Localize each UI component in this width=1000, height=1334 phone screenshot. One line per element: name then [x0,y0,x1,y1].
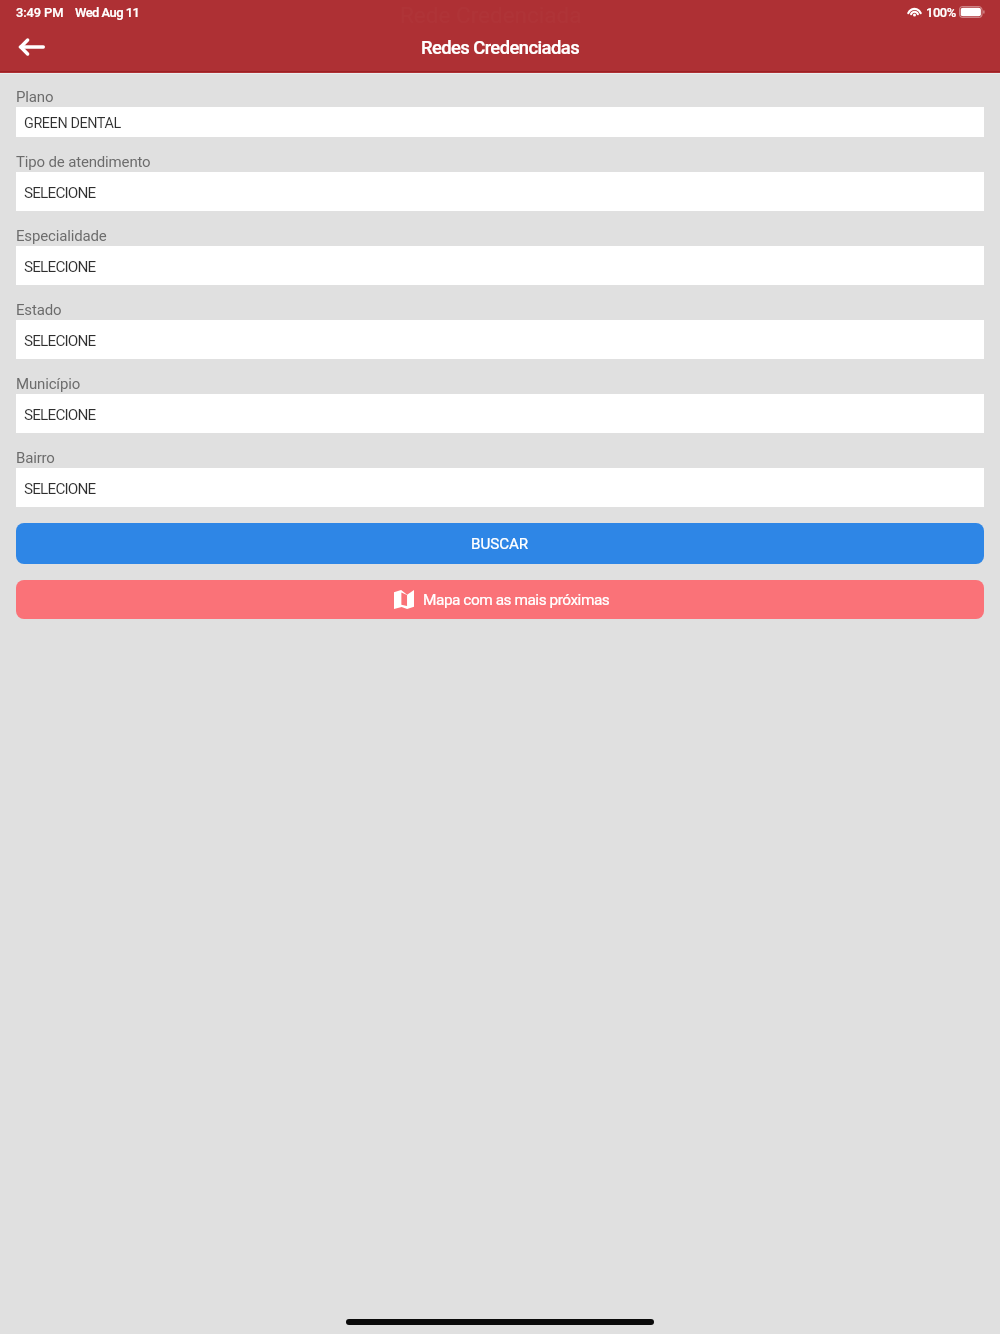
staticText: SELECIONE [24,480,96,498]
staticText: 3:49 PM [16,5,64,20]
staticText: SELECIONE [24,406,96,424]
button[interactable]: GREEN DENTAL [16,107,984,137]
staticText: Wed Aug 11 [75,5,140,20]
staticText: SELECIONE [24,258,96,276]
button[interactable]: SELECIONE [16,246,984,285]
staticText: BUSCAR [471,535,529,553]
staticText: Plano [16,88,54,106]
staticText: SELECIONE [24,184,96,202]
staticText: SELECIONE [24,332,96,350]
staticText: Bairro [16,449,55,467]
button[interactable]: Mapa com as mais próximas [16,580,984,619]
button[interactable]: SELECIONE [16,394,984,433]
button[interactable]: Back [5,22,59,72]
staticText: Redes Credenciadas [421,37,580,59]
staticText: Mapa com as mais próximas [423,591,610,609]
button[interactable]: BUSCAR [16,523,984,564]
staticText: Estado [16,301,62,319]
staticText: GREEN DENTAL [24,115,121,132]
button[interactable]: SELECIONE [16,320,984,359]
button[interactable]: SELECIONE [16,172,984,211]
staticText: 100% [926,5,956,20]
staticText: Tipo de atendimento [16,153,151,171]
staticText: Município [16,375,81,393]
button[interactable]: SELECIONE [16,468,984,507]
staticText: Especialidade [16,227,107,245]
